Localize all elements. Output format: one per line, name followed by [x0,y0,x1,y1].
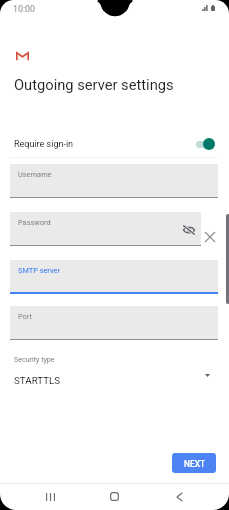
button[interactable]: Require sign-in [0,131,229,157]
button[interactable]: Clear [204,231,216,243]
button[interactable]: Select security type [198,366,216,384]
staticText: STARTTLS [14,375,61,386]
staticText: NEXT [184,459,206,469]
button[interactable]: Recents [34,484,67,509]
button[interactable]: SMTP server [10,260,218,294]
staticText: 10:00 [13,4,35,14]
staticText: Password [18,218,51,227]
button[interactable]: Port [10,306,218,340]
staticText: SMTP server [18,266,60,275]
button[interactable]: NEXT [172,453,216,473]
staticText: Require sign-in [14,139,74,150]
button[interactable]: Show password [181,222,196,237]
staticText: Outgoing server settings [14,76,174,93]
staticText: Username [18,170,52,179]
button[interactable]: Home [98,484,131,509]
staticText: Security type [14,355,55,363]
staticText: Port [18,312,32,321]
button[interactable]: Back [163,484,196,509]
button[interactable]: Username [10,164,218,198]
button[interactable]: Password [10,212,201,246]
